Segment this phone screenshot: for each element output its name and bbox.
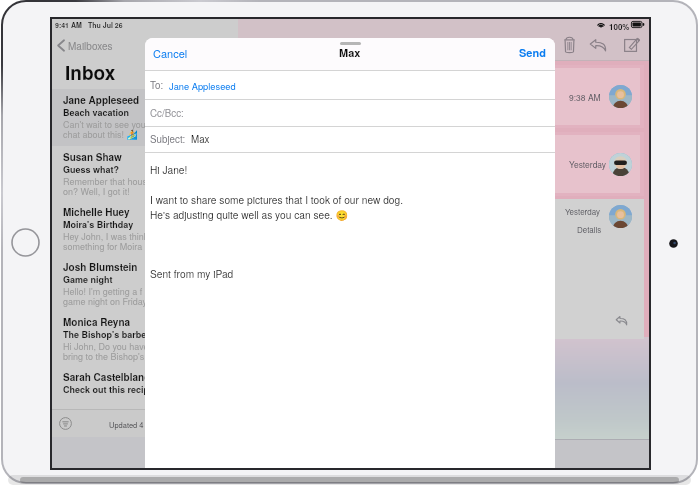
staticText: on? Well, I got it! <box>63 185 130 198</box>
staticText: bring to the Bishop's <box>63 350 145 363</box>
button[interactable]: Send <box>519 45 546 61</box>
staticText: something for Moira <box>63 240 143 253</box>
staticText: game night on Friday <box>63 295 147 308</box>
staticText: Details <box>577 224 602 235</box>
staticText: Game night <box>63 273 113 286</box>
staticText: Cc/Bcc: <box>150 106 184 120</box>
staticText: Beach vacation <box>63 106 129 119</box>
staticText: To: <box>150 78 169 92</box>
button[interactable]: Cancel <box>153 45 188 61</box>
staticText: Josh Blumstein <box>63 260 138 274</box>
staticText: Send <box>519 45 546 61</box>
staticText: Yesterday <box>569 158 607 170</box>
button[interactable]: Compose <box>621 33 643 55</box>
staticText: Thu Jul 26 <box>88 20 123 30</box>
staticText: He's adjusting quite well as you can see… <box>150 207 349 222</box>
button[interactable]: Sarah Castelblanc <box>52 366 238 408</box>
staticText: Monica Reyna <box>63 315 131 329</box>
staticText: Hi Jane! <box>150 162 188 177</box>
staticText: Moira's Birthday <box>63 218 134 231</box>
staticText: Updated 4 m <box>109 419 152 430</box>
button[interactable]: Reply <box>586 33 609 56</box>
button[interactable]: Mailboxes <box>57 36 113 55</box>
staticText: Remember that hous <box>63 175 147 188</box>
staticText: Max <box>191 132 210 146</box>
staticText: 9:41 AM <box>55 20 82 30</box>
staticText: Cancel <box>153 45 188 61</box>
staticText: Jane Appleseed <box>169 79 236 92</box>
staticText: Susan Shaw <box>63 150 122 164</box>
staticText: The Bishop's barbec <box>63 328 152 341</box>
staticText: Michelle Huey <box>63 205 130 219</box>
staticText: Can't wait to see you <box>63 118 146 131</box>
staticText: Yesterday <box>565 206 600 217</box>
button[interactable]: Susan Shaw <box>52 146 238 201</box>
staticText: chat about this! 🏄 <box>63 128 138 141</box>
button[interactable]: Delete <box>558 33 580 55</box>
staticText: Sent from my iPad <box>150 266 234 281</box>
staticText: Hello! I'm getting a f <box>63 285 143 298</box>
staticText: 9:38 AM <box>569 91 601 103</box>
staticText: Mailboxes <box>68 39 113 53</box>
staticText: 100% <box>609 21 630 32</box>
button[interactable]: Jane Appleseed <box>52 89 238 146</box>
staticText: Check out this recipe <box>63 383 155 396</box>
button[interactable]: Josh Blumstein <box>52 256 238 311</box>
staticText: Jane Appleseed <box>63 93 140 107</box>
staticText: Guess what? <box>63 163 120 176</box>
staticText: Sarah Castelblanc <box>63 370 150 384</box>
staticText: Inbox <box>65 59 116 86</box>
staticText: Hi John, Do you have <box>63 340 149 353</box>
button[interactable]: Monica Reyna <box>52 311 238 366</box>
staticText: Max <box>339 45 361 61</box>
staticText: I want to share some pictures that I too… <box>150 192 403 207</box>
staticText: Subject: <box>150 132 191 146</box>
staticText: Hey John, I was think <box>63 230 149 243</box>
button[interactable]: Filter <box>59 417 72 430</box>
button[interactable]: Michelle Huey <box>52 201 238 256</box>
